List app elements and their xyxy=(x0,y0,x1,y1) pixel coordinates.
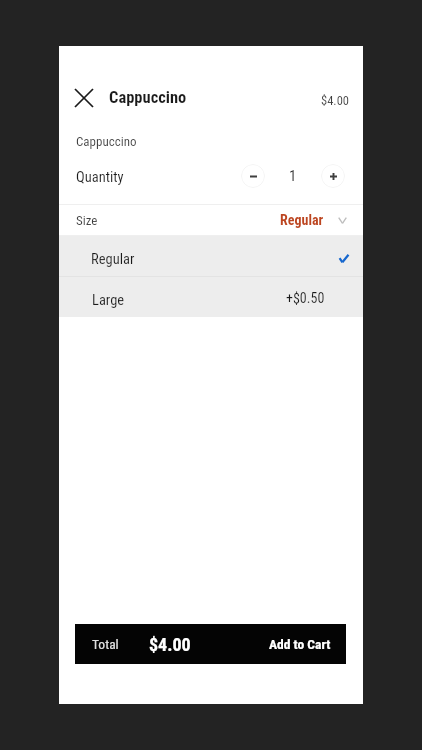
staticText: Quantity xyxy=(76,169,124,186)
staticText: +$0.50 xyxy=(286,290,325,306)
staticText: Regular xyxy=(280,212,324,228)
button[interactable]: Total xyxy=(75,624,346,664)
button[interactable]: Close xyxy=(70,84,97,111)
button[interactable]: Decrease quantity xyxy=(241,164,265,188)
staticText: Cappuccino xyxy=(76,134,137,149)
staticText: Regular xyxy=(91,251,135,268)
button[interactable]: Large xyxy=(59,277,363,317)
staticText: 1 xyxy=(289,167,297,185)
staticText: Add to Cart xyxy=(269,636,331,652)
staticText: Total xyxy=(92,636,119,652)
staticText: Size xyxy=(76,213,98,228)
button[interactable]: Increase quantity xyxy=(321,164,345,188)
button[interactable]: Size xyxy=(59,205,363,235)
button[interactable]: Regular xyxy=(59,236,363,276)
staticText: $4.00 xyxy=(149,634,191,655)
staticText: Cappuccino xyxy=(109,88,187,107)
staticText: $4.00 xyxy=(321,93,349,108)
staticText: Large xyxy=(92,292,125,309)
